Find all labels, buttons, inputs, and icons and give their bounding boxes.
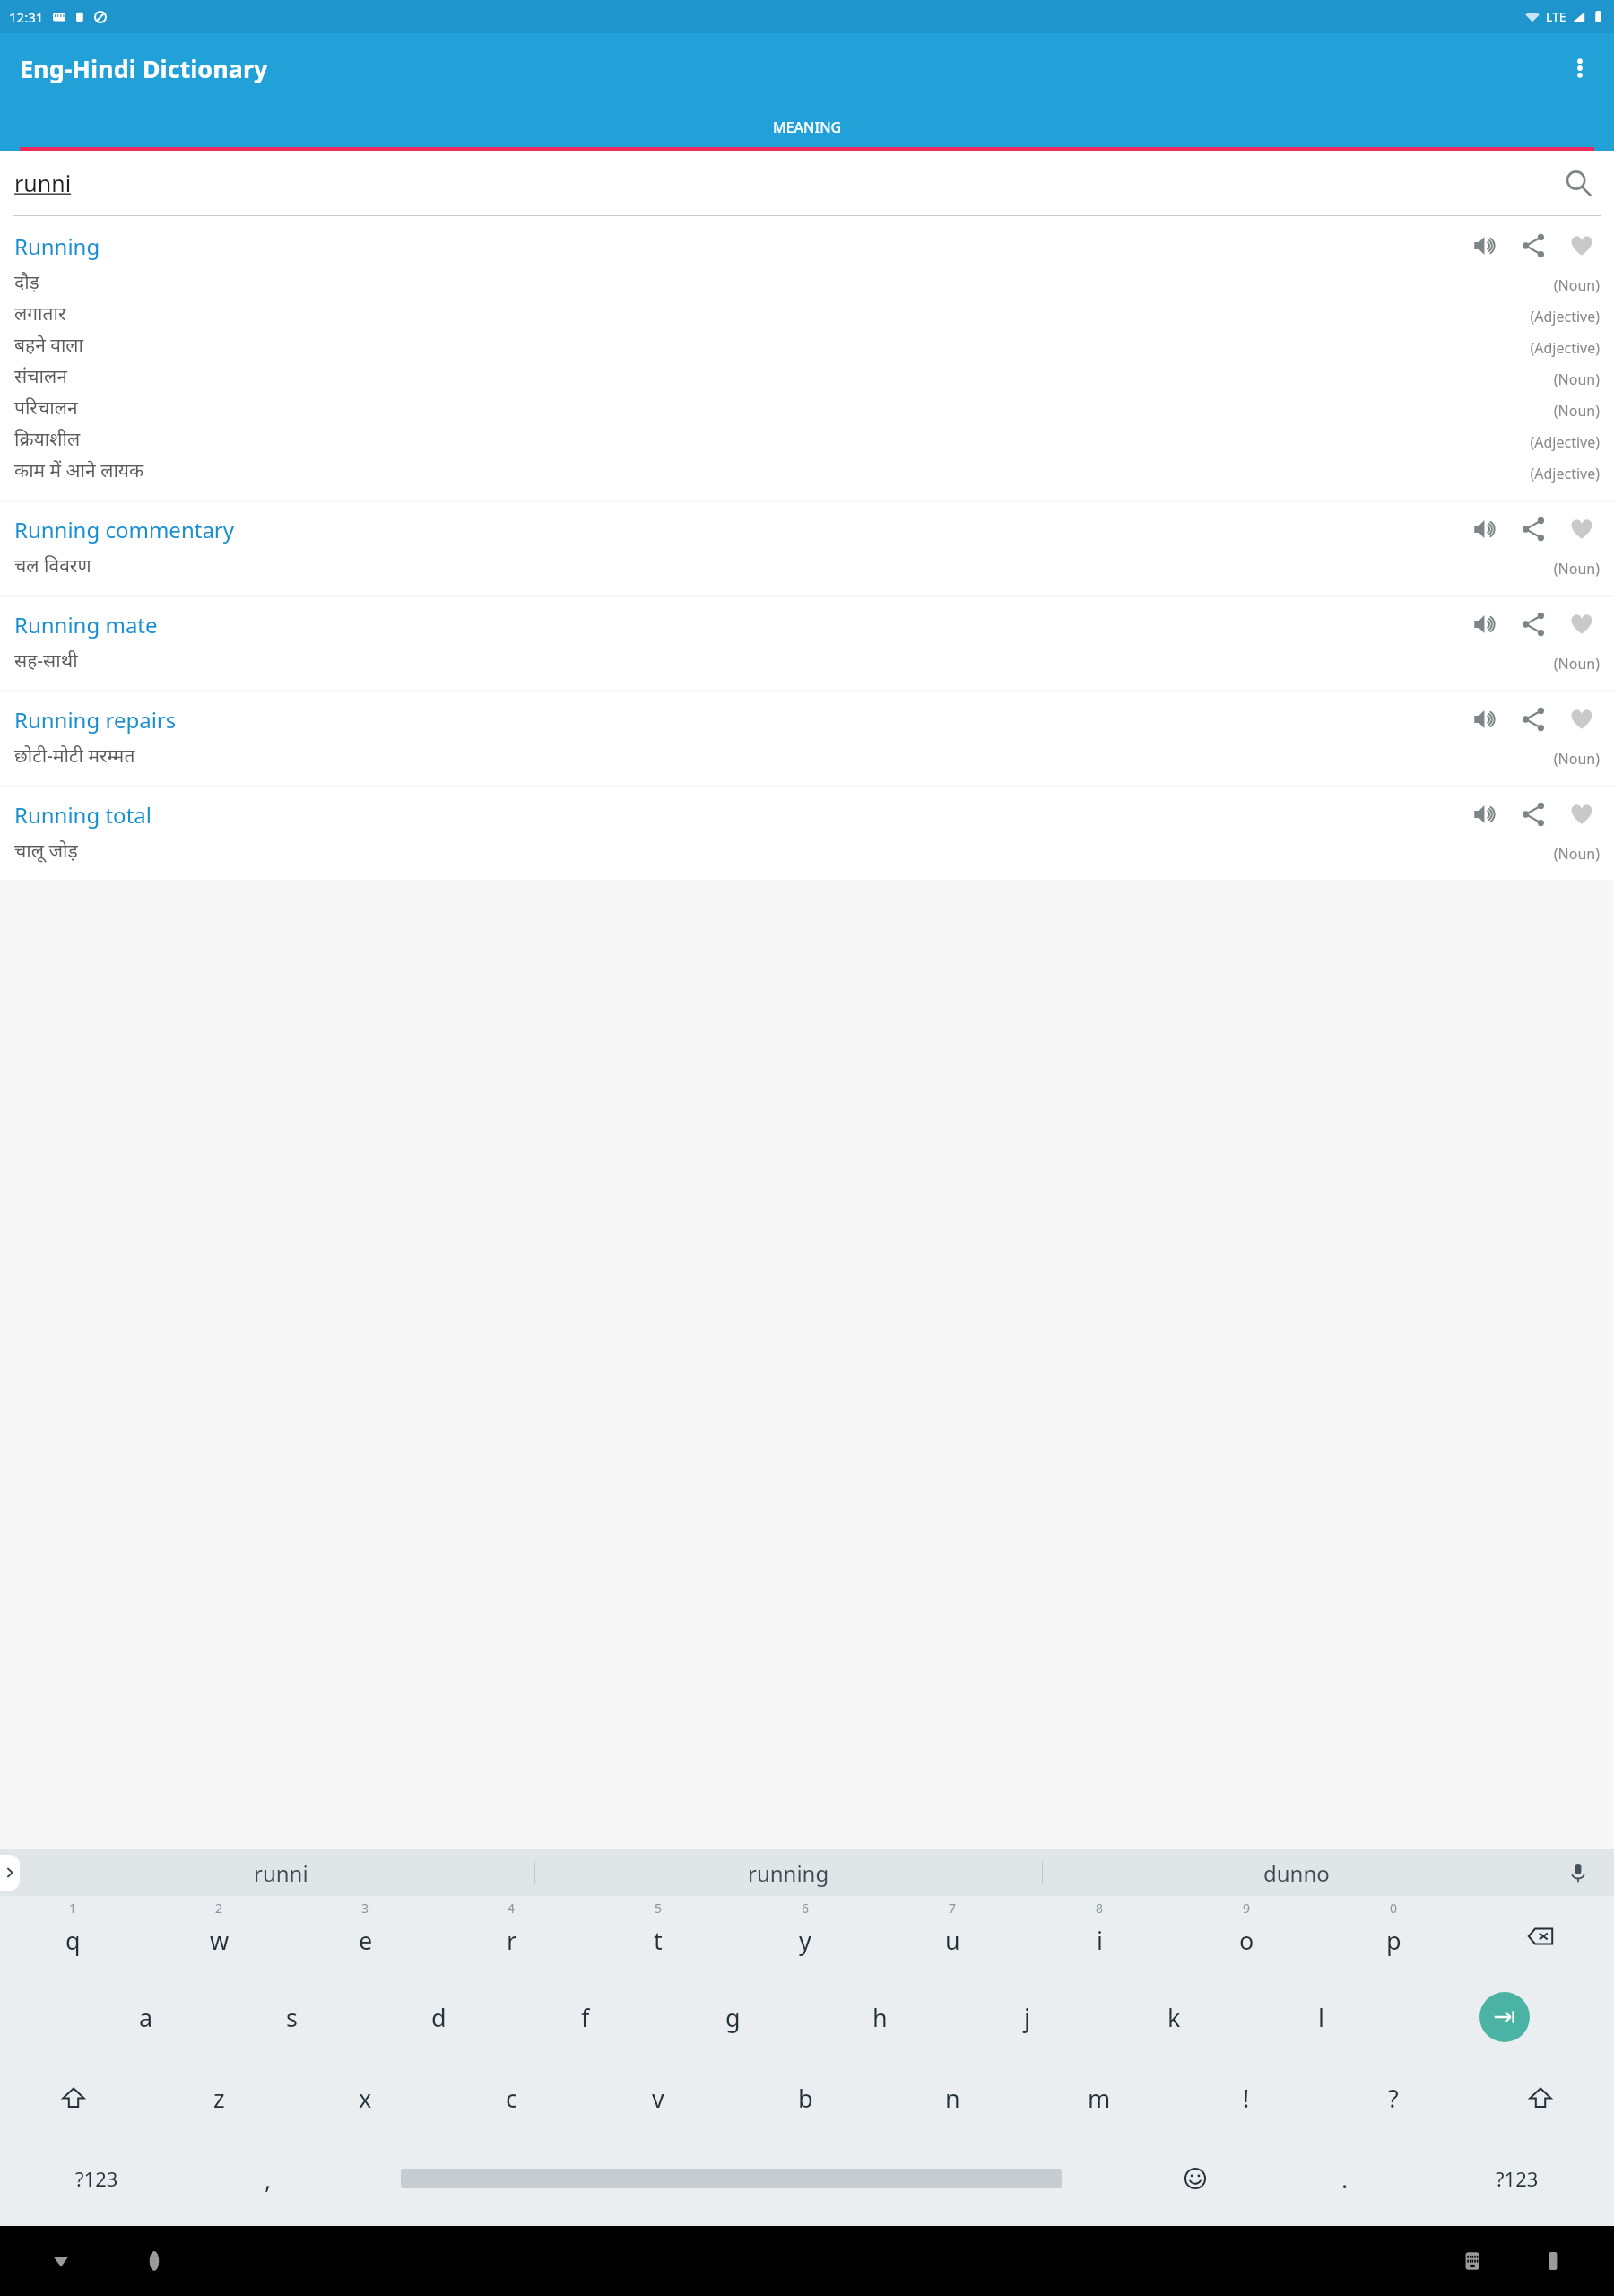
button[interactable]: c — [438, 2057, 585, 2138]
button[interactable]: 7 — [879, 1896, 1026, 1977]
button[interactable]: Recents — [1528, 2236, 1578, 2286]
staticText: 6 — [802, 1900, 810, 1917]
staticText: 3 — [361, 1900, 369, 1917]
button[interactable]: Shift — [1467, 2057, 1614, 2138]
button[interactable]: Favorite — [1564, 701, 1600, 737]
button[interactable]: Favorite — [1564, 228, 1600, 264]
staticText: runni — [14, 168, 72, 198]
staticText: (Noun) — [1553, 275, 1600, 295]
button[interactable]: g — [659, 1977, 806, 2057]
button[interactable]: Listen — [1467, 228, 1503, 264]
staticText: ?123 — [1496, 2165, 1539, 2192]
button[interactable]: running — [535, 1849, 1042, 1896]
button[interactable]: n — [879, 2057, 1026, 2138]
staticText: संचालन — [14, 363, 1553, 389]
staticText: 7 — [949, 1900, 957, 1917]
button[interactable]: x — [292, 2057, 438, 2138]
button[interactable]: s — [219, 1977, 365, 2057]
button[interactable]: 8 — [1026, 1896, 1173, 1977]
button[interactable]: Listen — [1467, 511, 1503, 547]
button[interactable]: Share — [1515, 606, 1551, 642]
staticText: (Noun) — [1553, 749, 1600, 769]
button[interactable]: a — [73, 1977, 219, 2057]
button[interactable]: Expand toolbar — [0, 1855, 20, 1891]
button[interactable]: 1 — [0, 1896, 146, 1977]
button[interactable]: v — [585, 2057, 732, 2138]
button[interactable]: 5 — [585, 1896, 732, 1977]
button[interactable]: 2 — [146, 1896, 292, 1977]
staticText: बहने वाला — [14, 332, 1530, 358]
button[interactable]: Favorite — [1564, 511, 1600, 547]
staticText: . — [1341, 2162, 1349, 2196]
staticText: (Adjective) — [1530, 464, 1600, 483]
button[interactable]: Listen — [1467, 701, 1503, 737]
staticText: s — [286, 2001, 298, 2034]
button[interactable]: Running commentary — [0, 502, 1614, 595]
button[interactable]: Running mate — [0, 597, 1614, 690]
button[interactable]: Home — [129, 2236, 179, 2286]
button[interactable]: 3 — [292, 1896, 438, 1977]
button[interactable]: Favorite — [1564, 796, 1600, 832]
staticText: b — [798, 2082, 813, 2115]
button[interactable]: Running repairs — [0, 692, 1614, 785]
button[interactable]: z — [146, 2057, 292, 2138]
button[interactable]: j — [953, 1977, 1100, 2057]
staticText: dunno — [1263, 1858, 1330, 1888]
staticText: j — [1024, 2001, 1030, 2034]
button[interactable]: Space — [343, 2138, 1120, 2219]
button[interactable]: 6 — [732, 1896, 879, 1977]
button[interactable]: Listen — [1467, 606, 1503, 642]
button[interactable]: Listen — [1467, 796, 1503, 832]
button[interactable]: , — [194, 2138, 343, 2219]
button[interactable]: Favorite — [1564, 606, 1600, 642]
staticText: n — [945, 2082, 960, 2115]
button[interactable]: . — [1270, 2138, 1419, 2219]
button[interactable]: Emoji — [1120, 2138, 1270, 2219]
button[interactable]: d — [365, 1977, 512, 2057]
staticText: LTE — [1546, 8, 1566, 25]
button[interactable]: l — [1247, 1977, 1394, 2057]
button[interactable]: 0 — [1320, 1896, 1467, 1977]
button[interactable]: Running — [0, 219, 1614, 500]
button[interactable]: Running total — [0, 787, 1614, 880]
button[interactable]: ! — [1173, 2057, 1320, 2138]
button[interactable]: k — [1100, 1977, 1247, 2057]
button[interactable]: 4 — [438, 1896, 585, 1977]
button[interactable]: Go — [1394, 1977, 1614, 2057]
button[interactable]: Share — [1515, 511, 1551, 547]
staticText: p — [1386, 1924, 1401, 1957]
button[interactable]: Search — [1557, 161, 1600, 204]
button[interactable]: m — [1026, 2057, 1173, 2138]
button[interactable]: Share — [1515, 796, 1551, 832]
staticText: Running mate — [14, 610, 1467, 639]
button[interactable]: Share — [1515, 228, 1551, 264]
button[interactable]: dunno — [1043, 1849, 1549, 1896]
staticText: x — [359, 2082, 372, 2115]
button[interactable]: Backspace — [1467, 1896, 1614, 1977]
staticText: (Noun) — [1553, 559, 1600, 578]
button[interactable]: MEANING — [0, 103, 1614, 151]
button[interactable]: Back — [36, 2236, 86, 2286]
staticText: u — [945, 1924, 960, 1957]
staticText: लगातार — [14, 300, 1530, 326]
staticText: ? — [1388, 2082, 1399, 2115]
staticText: m — [1088, 2082, 1111, 2115]
button[interactable]: More options — [1558, 47, 1601, 90]
staticText: छोटी-मोटी मरम्मत — [14, 743, 1553, 769]
button[interactable]: Hide keyboard — [1447, 2236, 1497, 2286]
staticText: g — [725, 2001, 741, 2034]
button[interactable]: ?123 — [1419, 2138, 1614, 2219]
button[interactable]: f — [512, 1977, 659, 2057]
button[interactable]: Voice input — [1558, 1853, 1598, 1892]
button[interactable]: h — [806, 1977, 953, 2057]
button[interactable]: ? — [1320, 2057, 1467, 2138]
button[interactable]: b — [732, 2057, 879, 2138]
button[interactable]: Share — [1515, 701, 1551, 737]
button[interactable]: Shift — [0, 2057, 146, 2138]
button[interactable]: 9 — [1173, 1896, 1320, 1977]
staticText: o — [1239, 1924, 1254, 1957]
staticText: y — [799, 1924, 811, 1957]
staticText: 9 — [1243, 1900, 1251, 1917]
button[interactable]: runni — [27, 1849, 534, 1896]
button[interactable]: ?123 — [0, 2138, 194, 2219]
